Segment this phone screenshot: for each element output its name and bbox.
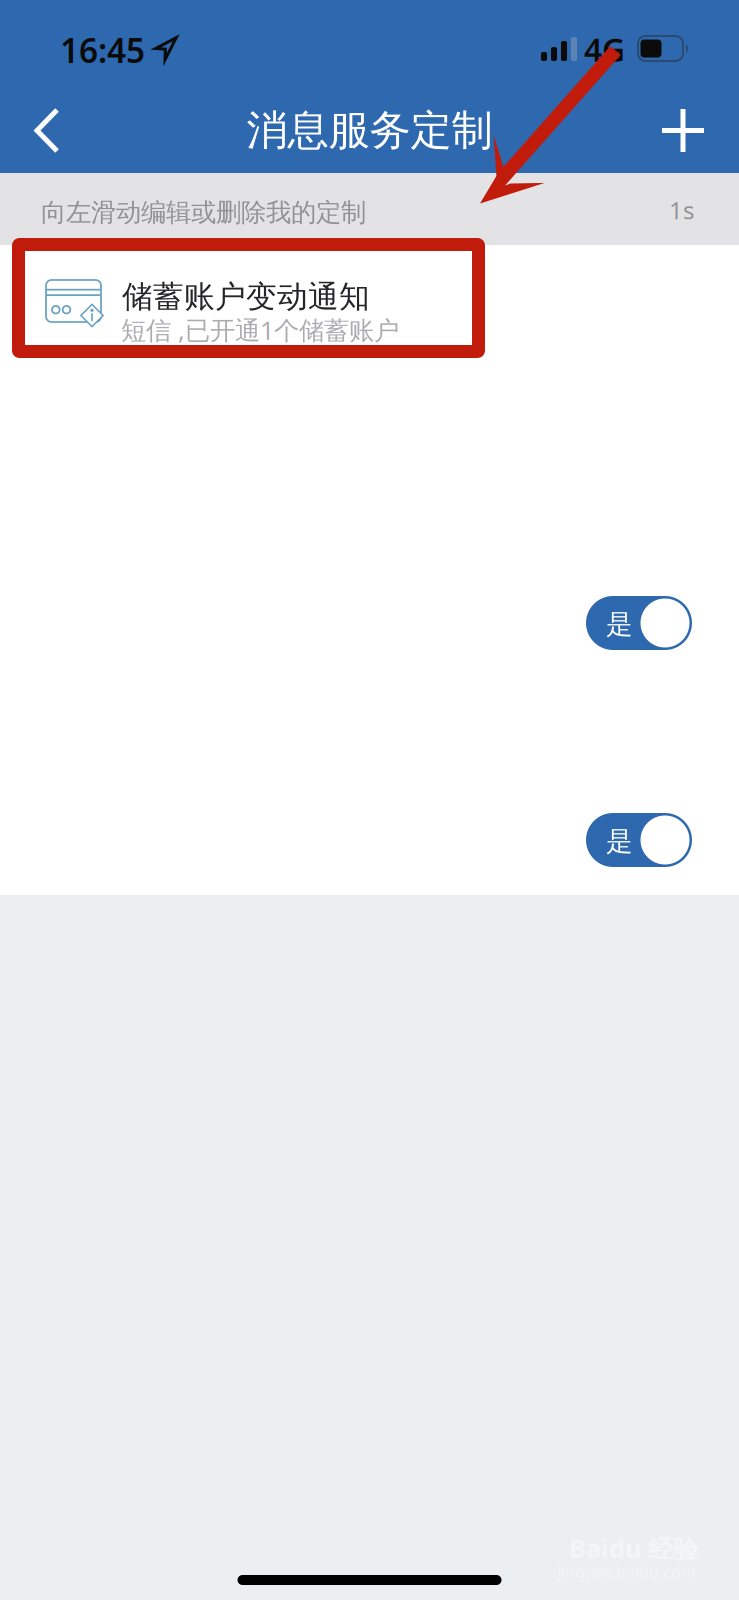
staticText: 向左滑动编辑或删除我的定制 [41,197,366,228]
button[interactable]: 返回 [4,88,90,173]
staticText: 1s [669,194,694,226]
staticText: 4G [584,28,625,70]
button[interactable]: 储蓄账户变动通知 [0,245,739,357]
button[interactable]: 是 [586,596,692,650]
staticText: 短信 ,已开通1个储蓄账户 [121,313,399,347]
staticText: 16:45 [60,28,145,72]
staticText: 是 [606,825,633,858]
staticText: 消息服务定制 [246,105,492,156]
staticText: 储蓄账户变动通知 [122,278,370,316]
staticText: 是 [606,608,633,641]
button[interactable]: 添加 [640,88,726,173]
button[interactable]: 是 [586,813,692,867]
